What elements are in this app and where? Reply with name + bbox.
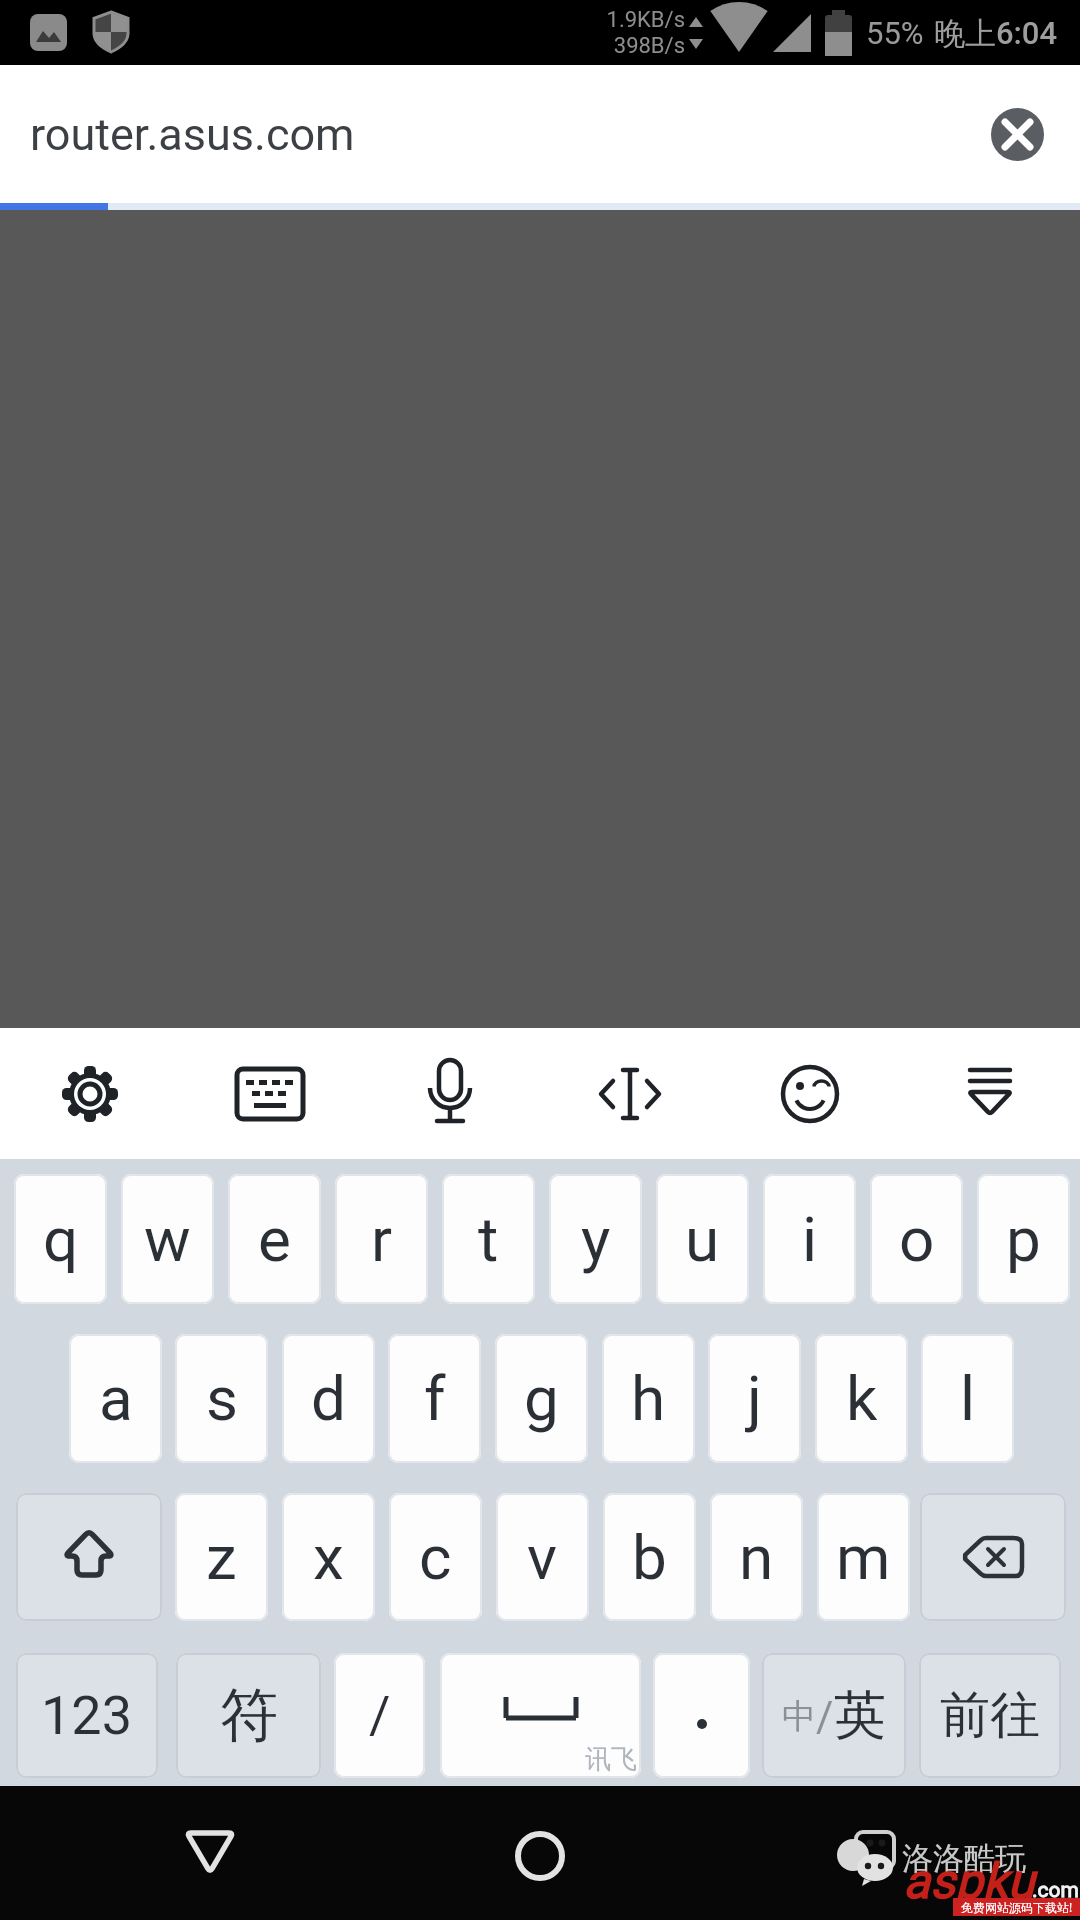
button[interactable] [360,1028,540,1159]
staticText: f [424,1362,446,1435]
staticText: r [371,1203,393,1276]
button[interactable]: 前往 [919,1653,1061,1778]
button[interactable]: 讯飞 [440,1653,641,1778]
staticText: d [311,1362,346,1435]
staticText: e [258,1203,291,1276]
button[interactable]: y [549,1174,642,1304]
button[interactable]: g [495,1334,588,1463]
staticText: y [581,1203,611,1276]
button[interactable]: 中 [762,1653,906,1778]
staticText: i [802,1203,818,1276]
button[interactable]: r [335,1174,428,1304]
staticText: 398B/s [613,33,685,59]
button[interactable]: u [656,1174,749,1304]
button[interactable] [900,1028,1080,1159]
button[interactable]: d [282,1334,375,1463]
staticText: 前往 [940,1684,1040,1747]
staticText: 符 [220,1679,278,1752]
button[interactable] [180,1028,360,1159]
staticText: q [43,1203,79,1276]
staticText: t [478,1203,499,1276]
button[interactable]: h [602,1334,695,1463]
staticText: 55% [866,15,924,51]
staticText: router.asus.com [30,108,355,161]
button[interactable]: k [815,1334,908,1463]
staticText: 英 [834,1683,886,1749]
button[interactable]: a [69,1334,162,1463]
staticText: 123 [41,1684,133,1747]
button[interactable]: v [496,1493,589,1621]
button[interactable]: c [389,1493,482,1621]
staticText: 中 [782,1695,816,1738]
staticText: m [836,1521,891,1594]
button[interactable]: p [977,1174,1070,1304]
button[interactable]: s [175,1334,268,1463]
button[interactable]: x [282,1493,375,1621]
button[interactable]: e [228,1174,321,1304]
button[interactable]: o [870,1174,963,1304]
button[interactable] [720,1028,900,1159]
button[interactable] [653,1653,750,1778]
button[interactable]: w [121,1174,214,1304]
staticText: x [313,1521,344,1594]
staticText: 讯飞 [585,1743,637,1776]
button[interactable]: f [388,1334,481,1463]
button[interactable] [0,1028,180,1159]
button[interactable]: 123 [16,1653,158,1778]
staticText: v [527,1521,558,1594]
staticText: o [899,1203,935,1276]
staticText: n [739,1521,774,1594]
button[interactable]: n [710,1493,803,1621]
staticText: w [144,1203,191,1276]
staticText: aspku [903,1853,1035,1910]
button[interactable] [991,108,1044,161]
button[interactable]: 符 [176,1653,321,1778]
button[interactable]: j [708,1334,801,1463]
button[interactable] [16,1493,162,1621]
staticText: a [99,1362,133,1435]
staticText: g [524,1362,559,1435]
staticText: c [419,1521,452,1594]
button[interactable] [150,1802,270,1902]
staticText: k [846,1362,878,1435]
staticText: .com [1032,1878,1079,1903]
staticText: p [1006,1203,1041,1276]
staticText: h [631,1362,666,1435]
staticText: j [747,1362,762,1435]
staticText: z [206,1521,237,1594]
staticText: l [960,1362,976,1435]
staticText: 1.9KB/s [606,7,685,33]
staticText: 晚上6:04 [934,14,1058,53]
staticText: 免费网站源码下载站! [961,1899,1073,1915]
staticText: s [206,1362,238,1435]
button[interactable]: l [921,1334,1014,1463]
button[interactable]: i [763,1174,856,1304]
button[interactable]: z [175,1493,268,1621]
button[interactable] [480,1806,600,1906]
button[interactable]: t [442,1174,535,1304]
button[interactable]: m [817,1493,910,1621]
staticText: 洛洛酷玩 [902,1839,1026,1878]
staticText: b [632,1521,667,1594]
button[interactable] [540,1028,720,1159]
staticText: / [369,1685,391,1746]
button[interactable]: q [14,1174,107,1304]
button[interactable]: b [603,1493,696,1621]
button[interactable]: / [334,1653,425,1778]
button[interactable] [920,1493,1066,1621]
staticText: u [685,1203,720,1276]
staticText: / [816,1692,834,1741]
